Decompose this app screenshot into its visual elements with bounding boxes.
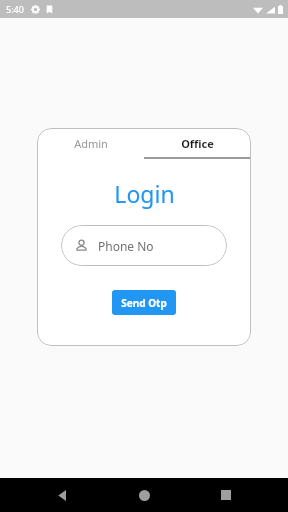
other: Account — [75, 239, 88, 252]
button[interactable]: Account — [61, 225, 227, 266]
button[interactable]: Admin — [37, 128, 144, 158]
staticText: 5:40 — [6, 3, 24, 15]
button[interactable]: Home — [124, 478, 164, 512]
staticText: Admin — [74, 136, 108, 151]
staticText: Send Otp — [121, 296, 167, 310]
staticText: Office — [181, 136, 214, 151]
staticText: Login — [114, 178, 175, 209]
staticText: Phone No — [98, 238, 154, 254]
button[interactable]: Recents — [206, 478, 246, 512]
button[interactable]: Office — [144, 128, 251, 158]
button[interactable]: Back — [42, 478, 82, 512]
button[interactable]: Send Otp — [112, 290, 176, 315]
